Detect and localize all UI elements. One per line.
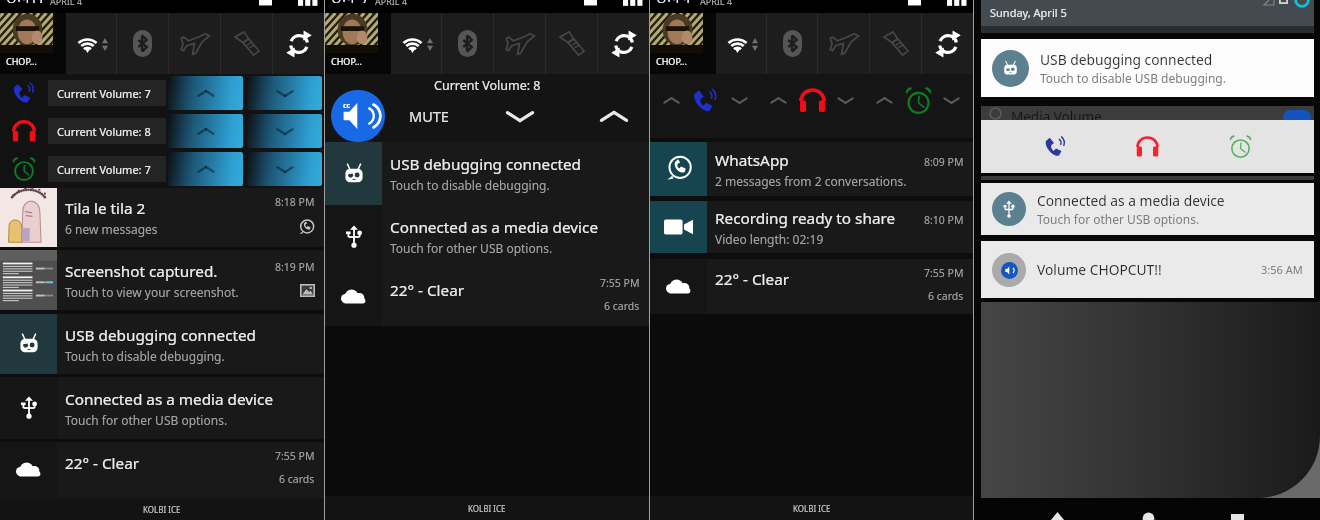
staticText: Current Volume: 7 xyxy=(57,86,151,101)
button[interactable]: Airplane mode xyxy=(169,13,220,74)
button[interactable]: Sync xyxy=(922,13,973,74)
staticText: 6 new messages xyxy=(65,221,158,237)
staticText: MUTE xyxy=(409,106,449,126)
button[interactable]: USB debugging connected xyxy=(981,39,1314,97)
button[interactable]: Stream xyxy=(904,86,933,115)
staticText: CHOP... xyxy=(6,55,37,67)
button[interactable]: Media volume xyxy=(1129,128,1166,165)
staticText: KOLBI ICE xyxy=(468,503,506,514)
button[interactable]: Volume up xyxy=(168,114,243,148)
staticText: Screenshot captured. xyxy=(65,261,218,282)
staticText: 8:10 PM xyxy=(924,213,964,227)
button[interactable]: Airplane mode xyxy=(818,13,869,74)
button[interactable]: Current Volume: 7 xyxy=(48,80,166,106)
button[interactable]: User profile xyxy=(325,13,391,74)
staticText: cc xyxy=(343,101,351,111)
button[interactable]: Back xyxy=(1050,512,1065,520)
button[interactable]: Volume down xyxy=(833,91,858,110)
staticText: Volume CHOPCUT!! xyxy=(1037,260,1261,279)
button[interactable]: Current Volume: 7 xyxy=(48,156,166,182)
staticText: CHOP... xyxy=(656,55,687,67)
button[interactable]: Airplane mode xyxy=(494,13,545,74)
button[interactable]: Stream xyxy=(691,86,720,115)
staticText: 7:55 PM xyxy=(600,276,640,290)
button[interactable]: Alarm volume xyxy=(1222,128,1259,165)
button[interactable]: Mute xyxy=(331,90,385,142)
button[interactable]: WhatsApp xyxy=(650,142,973,196)
button[interactable]: Recording ready to share xyxy=(650,201,973,253)
staticText: 2 messages from 2 conversations. xyxy=(715,173,907,189)
button[interactable]: Current Volume: 8 xyxy=(48,118,166,144)
button[interactable]: Volume down xyxy=(247,76,322,110)
staticText: APRIL 4 xyxy=(375,0,408,7)
button[interactable]: Volume up xyxy=(168,152,243,186)
button[interactable]: Volume up xyxy=(591,99,637,134)
button[interactable]: USB debugging connected xyxy=(0,314,324,374)
button[interactable]: Wi-Fi xyxy=(391,13,441,74)
button[interactable]: USB debugging connected xyxy=(325,142,649,205)
staticText: 8:09 PM xyxy=(924,155,964,169)
button[interactable]: Volume down xyxy=(497,99,543,134)
button[interactable]: Flashlight xyxy=(221,13,272,74)
button[interactable]: Wi-Fi xyxy=(66,13,116,74)
button[interactable]: Connected as a media device xyxy=(325,205,649,268)
button[interactable]: Bluetooth xyxy=(117,13,168,74)
staticText: Connected as a media device xyxy=(390,217,599,238)
staticText: APRIL 4 xyxy=(700,0,733,7)
button[interactable]: KOLBI ICE xyxy=(0,498,324,520)
staticText: WhatsApp xyxy=(715,150,789,171)
staticText: USB debugging connected xyxy=(390,154,582,175)
button[interactable]: Volume down xyxy=(247,114,322,148)
button[interactable]: Bluetooth xyxy=(442,13,493,74)
staticText: Connected as a media device xyxy=(65,389,274,410)
button[interactable]: 22° - Clear xyxy=(650,259,973,314)
staticText: 22° - Clear xyxy=(390,280,465,301)
button[interactable]: Flashlight xyxy=(870,13,921,74)
staticText: USB debugging connected xyxy=(65,325,257,346)
button[interactable]: Volume down xyxy=(939,91,964,110)
button[interactable]: Stream xyxy=(798,86,827,115)
staticText: Connected as a media device xyxy=(1037,191,1225,210)
button[interactable]: Call volume xyxy=(1037,128,1074,165)
button[interactable]: Volume up xyxy=(659,91,684,110)
button[interactable]: Volume up xyxy=(168,76,243,110)
staticText: 6 cards xyxy=(279,472,315,486)
button[interactable]: Tila le tila 2 xyxy=(0,188,324,247)
staticText: 8:18 PM xyxy=(275,195,315,209)
staticText: Tila le tila 2 xyxy=(65,198,146,219)
button[interactable]: Audio stream xyxy=(0,112,48,150)
staticText: Touch for other USB options. xyxy=(65,412,228,428)
button[interactable]: Volume up xyxy=(766,91,791,110)
staticText: 6 cards xyxy=(604,299,640,313)
staticText: Recording ready to share xyxy=(715,208,896,229)
button[interactable]: Audio stream xyxy=(0,74,48,112)
button[interactable]: Wi-Fi xyxy=(716,13,766,74)
button[interactable]: User profile xyxy=(0,13,66,74)
button[interactable]: Volume CHOPCUT!! xyxy=(981,241,1314,298)
button[interactable]: KOLBI ICE xyxy=(650,496,973,520)
button[interactable]: Connected as a media device xyxy=(0,377,324,439)
button[interactable]: Screenshot captured. xyxy=(0,250,324,310)
button[interactable]: Recents xyxy=(1231,512,1244,520)
button[interactable]: User profile xyxy=(650,13,716,74)
button[interactable]: Flashlight xyxy=(546,13,597,74)
button[interactable]: Media Volume xyxy=(981,106,1314,120)
button[interactable]: Audio stream xyxy=(0,150,48,188)
staticText: 6 cards xyxy=(928,289,964,303)
button[interactable]: Connected as a media device xyxy=(981,183,1314,235)
staticText: Touch for other USB options. xyxy=(390,240,553,256)
button[interactable]: 22° - Clear xyxy=(325,268,649,326)
button[interactable]: Volume down xyxy=(247,152,322,186)
button[interactable]: KOLBI ICE xyxy=(325,496,649,520)
button[interactable]: Volume up xyxy=(872,91,897,110)
staticText: Current Volume: 8 xyxy=(434,77,541,94)
staticText: 22° - Clear xyxy=(65,453,140,474)
button[interactable]: Bluetooth xyxy=(767,13,817,74)
button[interactable]: Sync xyxy=(598,13,649,74)
button[interactable]: Sync xyxy=(273,13,324,74)
staticText: 22° - Clear xyxy=(715,269,790,290)
button[interactable]: Volume down xyxy=(727,91,752,110)
button[interactable]: 22° - Clear xyxy=(0,442,324,498)
staticText: 7:55 PM xyxy=(275,449,315,463)
button[interactable]: Home xyxy=(1142,512,1155,520)
